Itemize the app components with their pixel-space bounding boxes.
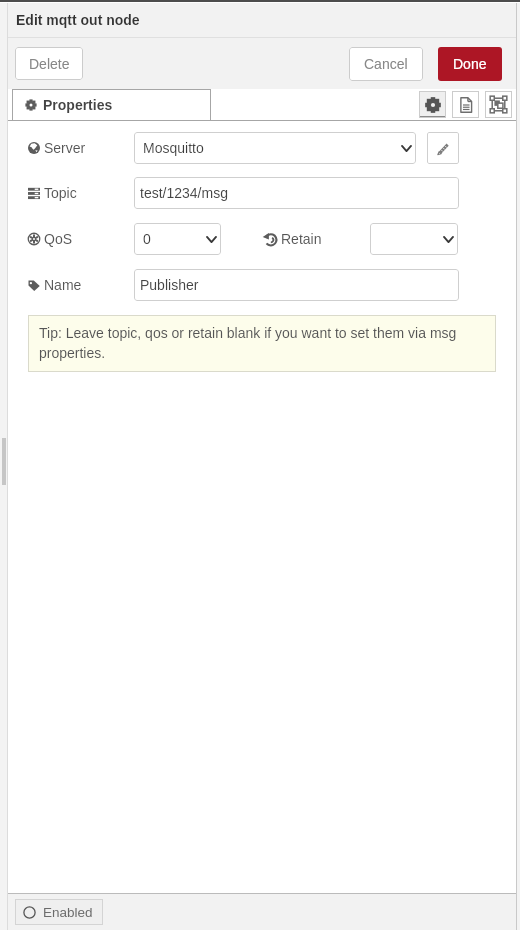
staticText: Retain xyxy=(281,231,322,247)
button[interactable] xyxy=(370,223,458,255)
staticText: Properties xyxy=(43,97,113,113)
button[interactable]: Properties xyxy=(12,89,211,121)
button[interactable]: Enabled xyxy=(15,899,103,925)
button[interactable]: 0 xyxy=(134,223,221,255)
button[interactable]: Cancel xyxy=(349,47,423,81)
staticText: Tip: Leave topic, qos or retain blank if… xyxy=(39,325,486,361)
staticText: Name xyxy=(44,277,82,293)
staticText: Publisher xyxy=(140,277,199,293)
button[interactable]: Delete xyxy=(15,47,83,80)
button[interactable]: Appearance xyxy=(485,91,512,118)
button[interactable]: Mosquitto xyxy=(134,132,416,164)
button[interactable]: Settings xyxy=(419,91,446,118)
staticText: Mosquitto xyxy=(143,140,204,156)
staticText: QoS xyxy=(44,231,73,247)
staticText: Topic xyxy=(44,185,77,201)
button[interactable]: Edit server xyxy=(427,132,459,164)
staticText: Cancel xyxy=(364,56,408,72)
staticText: 0 xyxy=(143,231,151,247)
staticText: test/1234/msg xyxy=(140,185,228,201)
button[interactable]: Publisher xyxy=(134,269,459,301)
staticText: Enabled xyxy=(43,905,93,920)
staticText: Done xyxy=(453,56,487,72)
staticText: Delete xyxy=(29,56,70,72)
staticText: Server xyxy=(44,140,86,156)
button[interactable]: Description xyxy=(452,91,479,118)
staticText: Edit mqtt out node xyxy=(16,12,140,28)
button[interactable]: Done xyxy=(438,47,502,81)
button[interactable]: test/1234/msg xyxy=(134,177,459,209)
